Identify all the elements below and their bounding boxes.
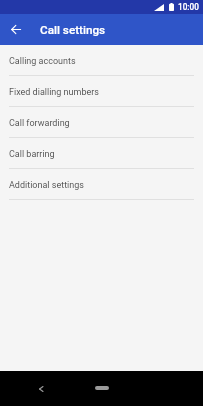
staticText: Calling accounts bbox=[9, 56, 76, 67]
button[interactable]: Calling accounts bbox=[0, 45, 203, 75]
button[interactable]: Fixed dialling numbers bbox=[0, 76, 203, 106]
staticText: Fixed dialling numbers bbox=[9, 87, 99, 98]
staticText: Call barring bbox=[9, 149, 55, 160]
staticText: Call forwarding bbox=[9, 118, 70, 129]
staticText: Additional settings bbox=[9, 180, 84, 191]
button[interactable]: Home bbox=[88, 380, 116, 396]
button[interactable]: Back bbox=[29, 377, 53, 401]
button[interactable]: Navigate up bbox=[0, 14, 31, 45]
button[interactable]: Additional settings bbox=[0, 169, 203, 199]
button[interactable]: Call barring bbox=[0, 138, 203, 168]
button[interactable]: Call forwarding bbox=[0, 107, 203, 137]
staticText: Call settings bbox=[40, 23, 106, 37]
staticText: 10:00 bbox=[178, 2, 199, 12]
